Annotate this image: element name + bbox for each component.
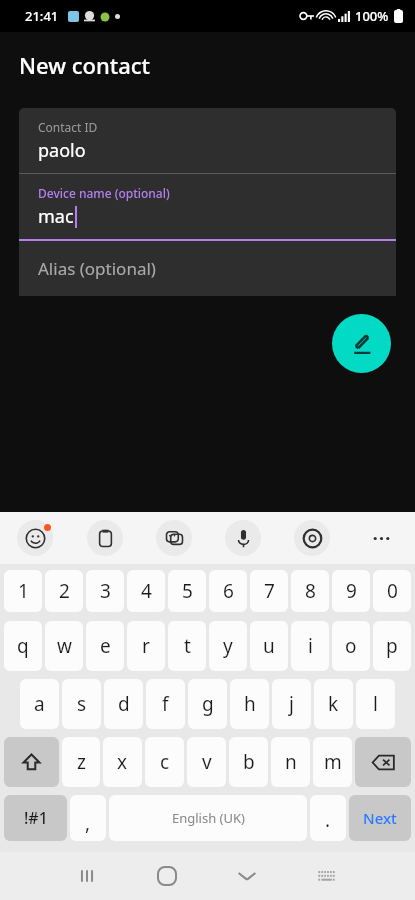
button[interactable]: Device name (optional)	[19, 174, 396, 239]
staticText: x	[117, 749, 128, 775]
staticText: Device name (optional)	[38, 185, 170, 201]
button[interactable]: 2	[45, 570, 83, 612]
staticText: 4	[141, 578, 152, 604]
staticText: 6	[223, 578, 234, 604]
button[interactable]: ,	[70, 795, 106, 841]
button[interactable]: b	[229, 737, 268, 787]
staticText: Next	[363, 808, 397, 828]
staticText: v	[202, 749, 212, 775]
button[interactable]: Alias (optional)	[19, 241, 396, 296]
button[interactable]: 5	[168, 570, 206, 612]
button[interactable]: a	[20, 679, 59, 729]
staticText: s	[77, 691, 87, 717]
button[interactable]: Hide keyboard	[207, 852, 287, 900]
staticText: t	[184, 633, 191, 659]
staticText: g	[202, 691, 214, 717]
staticText: j	[289, 691, 294, 717]
staticText: o	[345, 633, 357, 659]
staticText: b	[243, 749, 255, 775]
button[interactable]: x	[103, 737, 142, 787]
button[interactable]: Change keyboard	[287, 852, 367, 900]
staticText: 9	[346, 578, 357, 604]
button[interactable]: More options	[346, 512, 415, 564]
staticText: d	[118, 691, 130, 717]
button[interactable]: Shift	[4, 737, 59, 787]
button[interactable]: v	[187, 737, 226, 787]
button[interactable]: c	[145, 737, 184, 787]
button[interactable]: 8	[291, 570, 329, 612]
button[interactable]: .	[310, 795, 346, 841]
staticText: y	[223, 633, 233, 659]
staticText: Contact ID	[38, 119, 98, 135]
button[interactable]: Keyboard settings	[277, 512, 346, 564]
button[interactable]: e	[86, 621, 124, 671]
button[interactable]: Home	[127, 852, 207, 900]
button[interactable]: y	[209, 621, 247, 671]
button[interactable]: n	[271, 737, 310, 787]
staticText: h	[244, 691, 256, 717]
button[interactable]: !#1	[4, 795, 67, 841]
staticText: w	[57, 633, 72, 659]
staticText: e	[100, 633, 111, 659]
button[interactable]: Emoji	[0, 512, 70, 564]
button[interactable]: q	[4, 621, 42, 671]
staticText: ,	[85, 810, 91, 836]
staticText: 3	[100, 578, 111, 604]
button[interactable]: r	[127, 621, 165, 671]
button[interactable]: 9	[332, 570, 370, 612]
button[interactable]: Backspace	[355, 737, 411, 787]
button[interactable]: 1	[4, 570, 42, 612]
staticText: New contact	[19, 50, 151, 80]
staticText: 1	[18, 578, 29, 604]
staticText: mac	[38, 204, 74, 229]
button[interactable]: 4	[127, 570, 165, 612]
button[interactable]: w	[45, 621, 83, 671]
button[interactable]: g	[188, 679, 227, 729]
button[interactable]: Recents	[47, 852, 127, 900]
button[interactable]: 3	[86, 570, 124, 612]
button[interactable]: Edit	[332, 314, 391, 373]
staticText: 7	[264, 578, 275, 604]
staticText: r	[142, 633, 150, 659]
staticText: q	[17, 633, 29, 659]
button[interactable]: 0	[373, 570, 411, 612]
staticText: i	[308, 633, 313, 659]
staticText: l	[373, 691, 378, 717]
button[interactable]: l	[356, 679, 395, 729]
staticText: 8	[305, 578, 316, 604]
staticText: !#1	[24, 807, 48, 829]
button[interactable]: u	[250, 621, 288, 671]
staticText: .	[325, 807, 331, 833]
staticText: p	[386, 633, 398, 659]
button[interactable]: f	[146, 679, 185, 729]
button[interactable]: Voice input	[208, 512, 277, 564]
staticText: k	[328, 691, 339, 717]
button[interactable]: m	[313, 737, 352, 787]
button[interactable]: k	[314, 679, 353, 729]
staticText: 2	[59, 578, 70, 604]
staticText: 0	[387, 578, 398, 604]
staticText: 100%	[355, 7, 389, 25]
button[interactable]: 6	[209, 570, 247, 612]
staticText: a	[34, 691, 45, 717]
button[interactable]: Next	[349, 795, 411, 841]
button[interactable]: Stickers	[139, 512, 208, 564]
button[interactable]: p	[373, 621, 411, 671]
staticText: m	[324, 749, 342, 775]
button[interactable]: z	[62, 737, 100, 787]
staticText: 5	[182, 578, 193, 604]
button[interactable]: Contact ID	[19, 108, 396, 173]
button[interactable]: j	[272, 679, 311, 729]
button[interactable]: i	[291, 621, 329, 671]
button[interactable]: h	[230, 679, 269, 729]
button[interactable]: English (UK)	[109, 795, 307, 841]
staticText: 21:41	[25, 7, 59, 25]
staticText: f	[162, 691, 169, 717]
button[interactable]: d	[104, 679, 143, 729]
button[interactable]: 7	[250, 570, 288, 612]
button[interactable]: Clipboard	[70, 512, 139, 564]
staticText: z	[77, 749, 86, 775]
button[interactable]: t	[168, 621, 206, 671]
button[interactable]: o	[332, 621, 370, 671]
button[interactable]: s	[62, 679, 101, 729]
